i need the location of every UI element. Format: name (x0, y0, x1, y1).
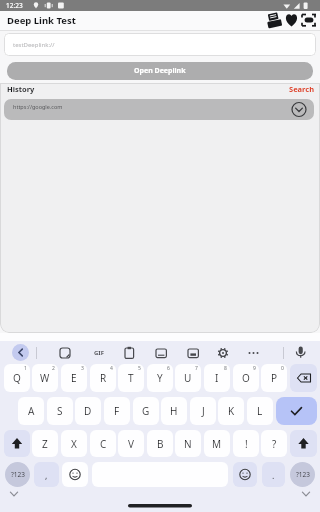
button[interactable]: ! (233, 430, 259, 457)
staticText: 5 (138, 365, 141, 372)
staticText: Search (289, 84, 315, 94)
button[interactable] (285, 11, 300, 30)
button[interactable]: D (75, 397, 101, 425)
staticText: 3 (81, 365, 84, 372)
staticText: C (100, 437, 107, 451)
staticText: 2 (52, 365, 55, 372)
button[interactable]: E (61, 364, 87, 392)
button[interactable]: N (175, 430, 201, 457)
staticText: F (114, 404, 120, 418)
staticText: Z (42, 437, 48, 451)
staticText: K (228, 404, 235, 418)
staticText: M (212, 437, 222, 451)
staticText: Q (13, 371, 21, 385)
button[interactable]: S (47, 397, 73, 425)
staticText: J (202, 404, 205, 418)
button[interactable]: P (261, 364, 287, 392)
button[interactable]: A (18, 397, 44, 425)
staticText: I (215, 371, 219, 385)
button[interactable]: Y (147, 364, 173, 392)
button[interactable]: Search (289, 83, 317, 95)
button[interactable] (290, 430, 317, 457)
button[interactable]: testDeeplink:// (4, 33, 316, 56)
staticText: ? (272, 437, 277, 451)
button[interactable]: Q (4, 364, 30, 392)
staticText: GIF (94, 349, 104, 357)
button[interactable]: K (218, 397, 244, 425)
button[interactable]: Z (32, 430, 58, 457)
staticText: X (71, 437, 77, 451)
staticText: A (28, 404, 35, 418)
staticText: Y (157, 371, 163, 385)
button[interactable]: U (175, 364, 201, 392)
staticText: https://google.com (13, 103, 63, 110)
staticText: B (157, 437, 164, 451)
button[interactable] (276, 397, 317, 425)
staticText: T (128, 371, 134, 385)
button[interactable]: M (204, 430, 230, 457)
button[interactable]: G (133, 397, 159, 425)
staticText: 6 (167, 365, 170, 372)
staticText: Open Deeplink (134, 66, 186, 76)
staticText: ?123 (296, 470, 310, 479)
staticText: 1 (24, 365, 27, 372)
button[interactable]: https://google.com (4, 99, 314, 120)
button[interactable]: T (118, 364, 144, 392)
staticText: H (170, 404, 178, 418)
staticText: G (142, 404, 150, 418)
button[interactable]: W (32, 364, 58, 392)
staticText: V (128, 437, 134, 451)
button[interactable]: X (61, 430, 87, 457)
button[interactable]: H (161, 397, 187, 425)
button[interactable] (301, 11, 317, 30)
button[interactable] (233, 462, 257, 487)
staticText: 7 (195, 365, 198, 372)
button[interactable] (62, 462, 88, 487)
staticText: ! (245, 437, 248, 451)
staticText: W (40, 371, 50, 385)
button[interactable]: R (90, 364, 116, 392)
button[interactable] (264, 11, 284, 30)
staticText: R (100, 371, 107, 385)
staticText: S (57, 404, 63, 418)
staticText: ?123 (11, 470, 25, 479)
button[interactable]: GIF (88, 344, 110, 362)
staticText: . (272, 469, 275, 481)
button[interactable]: I (204, 364, 230, 392)
staticText: N (184, 437, 192, 451)
staticText: testDeeplink:// (13, 41, 55, 49)
button[interactable]: B (147, 430, 173, 457)
button[interactable]: O (233, 364, 259, 392)
staticText: 9 (253, 365, 256, 372)
button[interactable]: , (34, 462, 59, 487)
staticText: U (184, 371, 192, 385)
button[interactable] (12, 344, 29, 361)
button[interactable]: . (262, 462, 285, 487)
button[interactable] (4, 430, 30, 457)
button[interactable]: J (190, 397, 216, 425)
staticText: L (257, 404, 263, 418)
button[interactable]: Open Deeplink (7, 62, 313, 80)
button[interactable]: C (90, 430, 116, 457)
staticText: 8 (224, 365, 227, 372)
button[interactable]: ?123 (290, 462, 315, 487)
button[interactable]: L (247, 397, 273, 425)
staticText: 12:23 (6, 1, 23, 10)
staticText: D (84, 404, 92, 418)
staticText: P (271, 371, 278, 385)
staticText: History (7, 84, 35, 94)
staticText: , (45, 469, 48, 481)
button[interactable]: ?123 (5, 462, 30, 487)
staticText: E (71, 371, 77, 385)
staticText: Deep Link Test (7, 14, 76, 27)
staticText: 4 (110, 365, 113, 372)
staticText: 0 (281, 365, 284, 372)
staticText: O (242, 371, 250, 385)
button[interactable] (290, 364, 317, 392)
button[interactable]: ? (261, 430, 287, 457)
button[interactable]: F (104, 397, 130, 425)
button[interactable]: V (118, 430, 144, 457)
